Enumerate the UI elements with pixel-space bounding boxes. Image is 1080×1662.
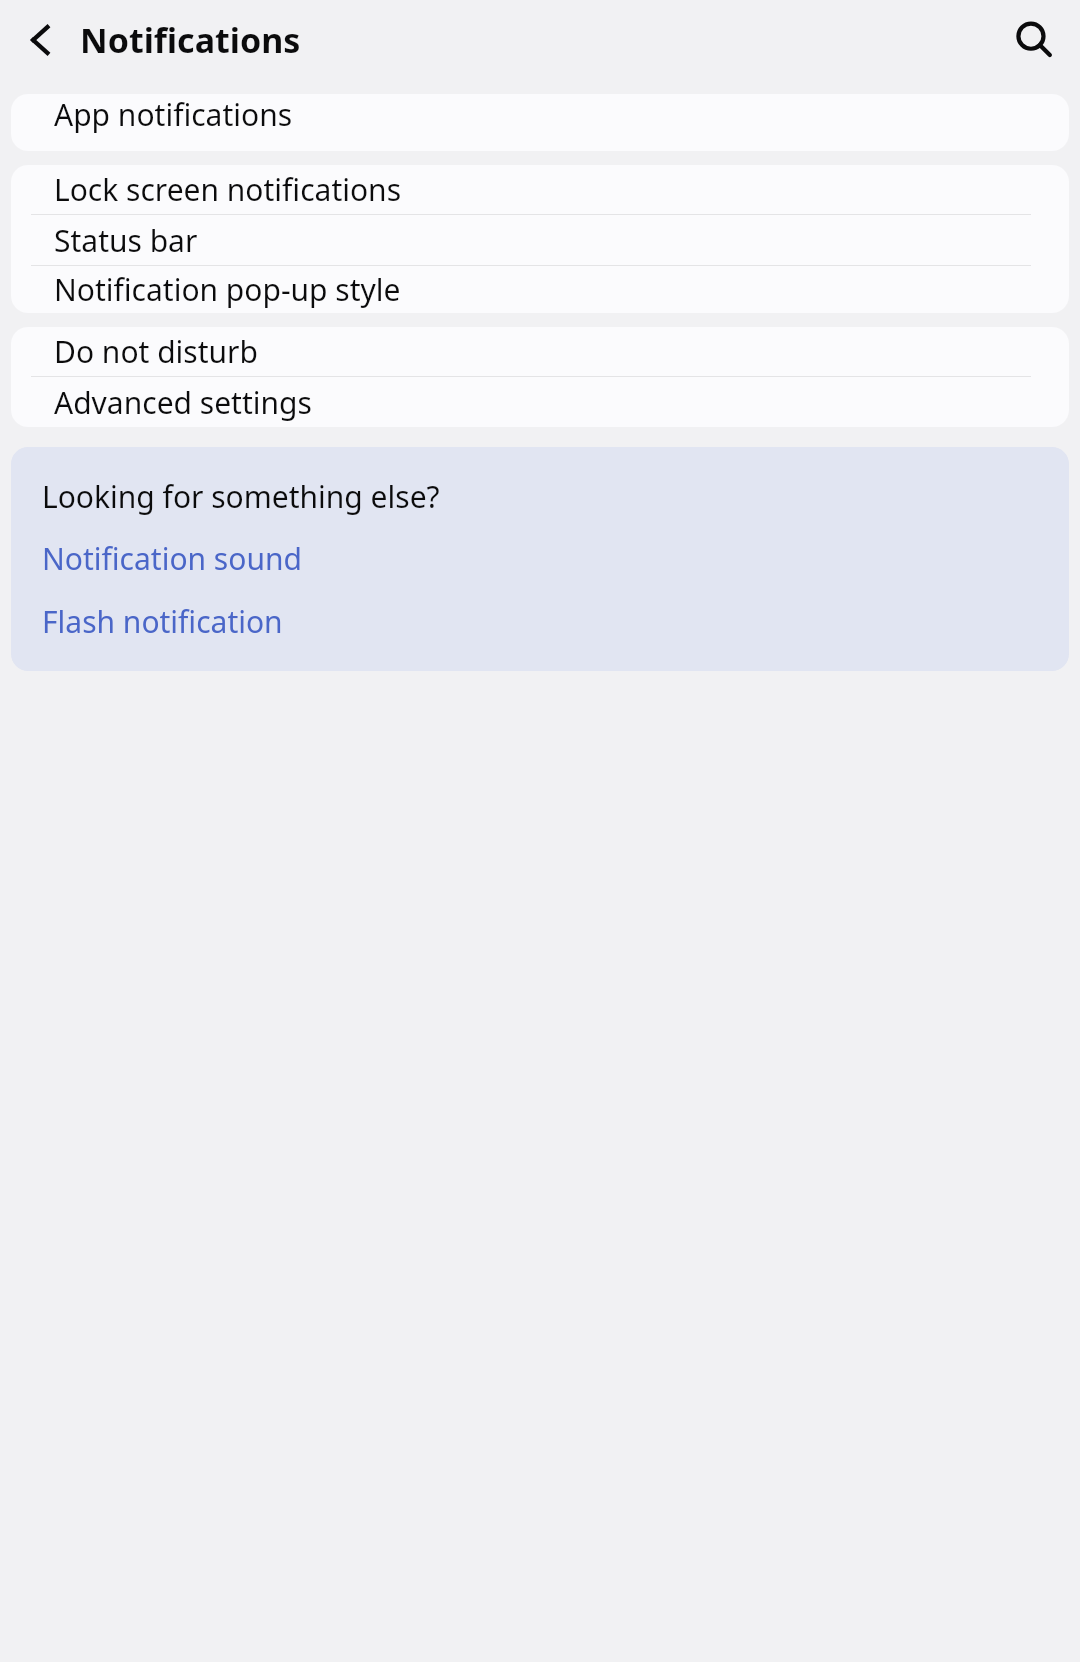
button[interactable]: Search [1006,12,1062,68]
button[interactable]: App notifications [11,94,1069,151]
button[interactable]: Status bar [11,215,1069,265]
staticText: Looking for something else? [42,476,440,517]
button[interactable]: Lock screen notifications [11,165,1069,214]
button[interactable]: Back [14,12,70,68]
button[interactable]: Notification pop-up style [11,266,1069,313]
staticText: Advanced settings [54,382,312,423]
staticText: Status bar [54,220,198,261]
staticText: Do not disturb [54,331,258,372]
staticText: App notifications [54,94,293,135]
staticText: Notification pop-up style [54,269,401,310]
staticText: Notification sound [42,538,302,579]
button[interactable]: Advanced settings [11,377,1069,427]
staticText: Lock screen notifications [54,169,402,210]
button[interactable]: Flash notification [42,596,1038,647]
button[interactable]: Do not disturb [11,327,1069,376]
staticText: Flash notification [42,601,283,642]
button[interactable]: Notification sound [42,533,1038,584]
staticText: Notifications [80,17,301,63]
